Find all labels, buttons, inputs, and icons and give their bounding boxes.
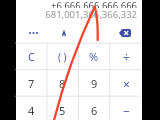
button[interactable]: 9	[78, 70, 110, 97]
button[interactable]: 8	[47, 70, 78, 97]
staticText: −	[123, 103, 130, 119]
button[interactable]: ×	[110, 70, 142, 97]
staticText: ÷	[123, 49, 130, 65]
button[interactable]: ( )	[47, 43, 78, 70]
staticText: 5	[59, 103, 66, 118]
staticText: 8	[59, 76, 66, 91]
button[interactable]: Backspace	[109, 24, 140, 42]
button[interactable]: Expand keypad	[48, 24, 79, 42]
staticText: 4	[28, 103, 35, 118]
staticText: 9	[91, 76, 98, 91]
staticText: ×	[123, 76, 130, 92]
button[interactable]: ÷	[110, 43, 142, 70]
button[interactable]: C	[16, 43, 47, 70]
staticText: C	[28, 49, 35, 64]
staticText: 7	[28, 76, 35, 91]
button[interactable]: −	[110, 97, 142, 120]
staticText: +6 666 666 666 666	[51, 0, 137, 8]
button[interactable]: 5	[47, 97, 78, 120]
button[interactable]: 7	[16, 70, 47, 97]
button[interactable]: %	[78, 43, 110, 70]
button[interactable]: More options	[18, 24, 49, 42]
staticText: 681,001,366,366,332	[45, 8, 137, 19]
button[interactable]: 6	[78, 97, 110, 120]
staticText: 6	[91, 103, 98, 118]
staticText: %	[89, 49, 99, 64]
button[interactable]: 4	[16, 97, 47, 120]
staticText: ( )	[58, 50, 67, 64]
